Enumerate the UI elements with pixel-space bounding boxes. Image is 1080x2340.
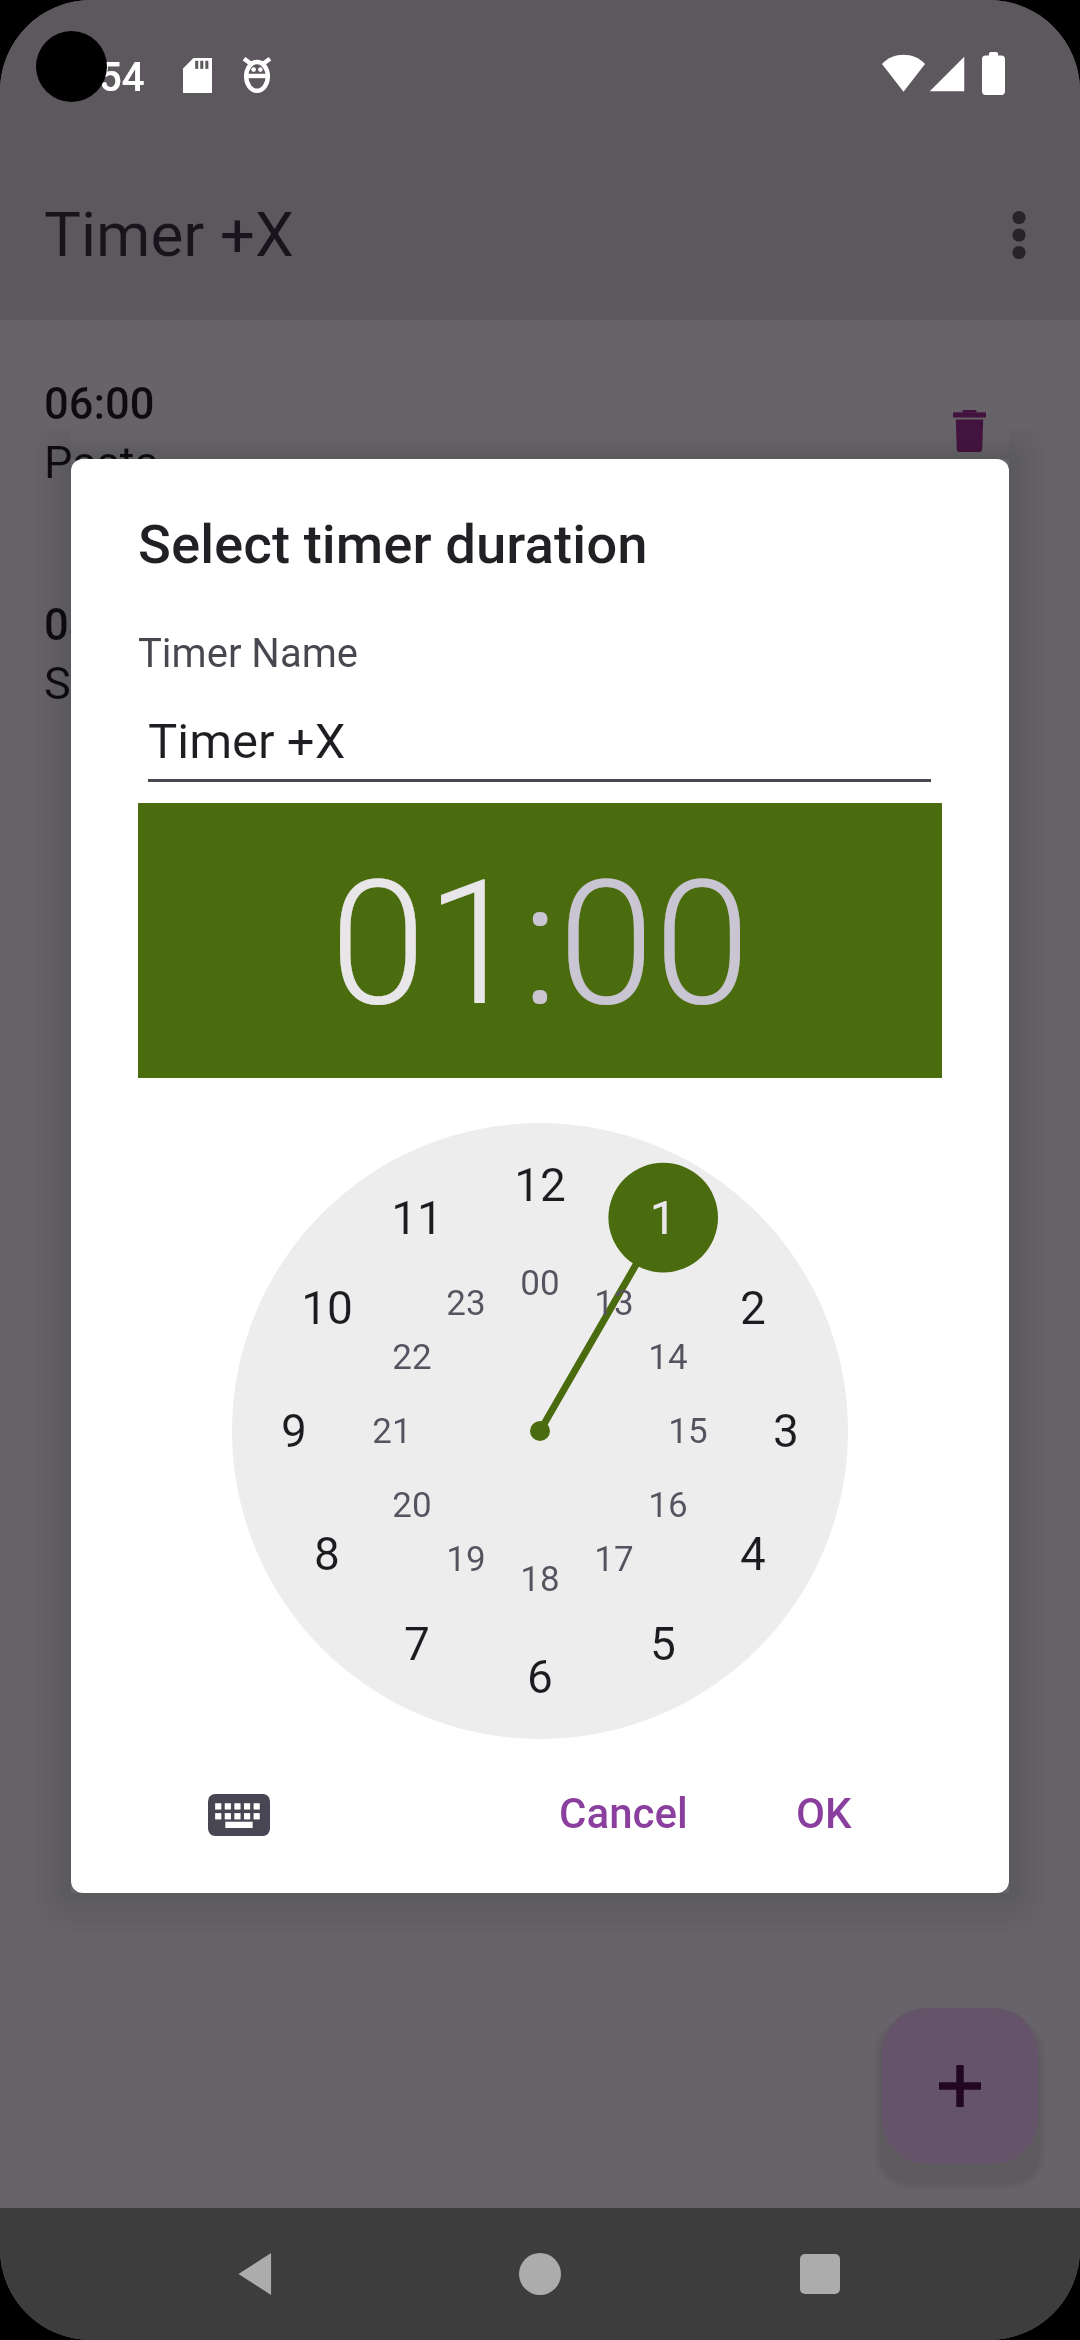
staticText: Pasta	[44, 436, 160, 489]
button[interactable]: Switch to text input mode	[187, 1764, 291, 1866]
staticText: 5	[650, 1617, 676, 1671]
staticText: 16	[648, 1485, 688, 1526]
staticText: 10:54	[43, 54, 145, 101]
button[interactable]: 11	[373, 1174, 461, 1262]
button[interactable]: More options	[959, 175, 1079, 295]
staticText: Cancel	[559, 1789, 688, 1838]
staticText: 14	[648, 1337, 688, 1378]
staticText: 18	[520, 1559, 560, 1600]
staticText: 23	[446, 1283, 486, 1324]
button[interactable]: 6	[496, 1633, 584, 1721]
staticText: 6	[527, 1650, 553, 1704]
button[interactable]: 18	[496, 1535, 584, 1623]
button[interactable]: 15	[644, 1387, 732, 1475]
button[interactable]: 20	[368, 1461, 456, 1549]
staticText: 13	[594, 1283, 634, 1324]
button[interactable]: 4	[709, 1510, 797, 1598]
button[interactable]: 06:00	[0, 376, 1080, 526]
button[interactable]: 23	[422, 1259, 510, 1347]
button[interactable]: 13	[570, 1259, 658, 1347]
staticText: 4	[740, 1527, 766, 1581]
staticText: OK	[796, 1789, 852, 1838]
button[interactable]: 17	[570, 1515, 658, 1603]
staticText: 06:00	[44, 379, 155, 430]
button[interactable]: 01	[138, 803, 942, 1078]
button[interactable]: 00	[496, 1239, 584, 1327]
staticText: 8	[314, 1527, 340, 1581]
button[interactable]: 21	[348, 1387, 436, 1475]
staticText: 01	[330, 843, 522, 1046]
button[interactable]: 3	[742, 1387, 830, 1475]
button[interactable]: Delete timer	[919, 381, 1019, 481]
button[interactable]: 7	[373, 1600, 461, 1688]
staticText: 11	[391, 1191, 443, 1245]
button[interactable]: Recents	[765, 2219, 875, 2329]
staticText: Timer +X	[148, 713, 346, 770]
button[interactable]: 9	[250, 1387, 338, 1475]
staticText: 21	[372, 1411, 412, 1452]
button[interactable]: 14	[624, 1313, 712, 1401]
staticText: 12	[514, 1158, 566, 1212]
staticText: 2	[740, 1281, 766, 1335]
button[interactable]: Cancel	[529, 1771, 718, 1856]
button[interactable]: 2	[709, 1264, 797, 1352]
button[interactable]: OK	[766, 1771, 882, 1856]
button[interactable]: 1	[619, 1174, 707, 1262]
button[interactable]: 16	[624, 1461, 712, 1549]
staticText: Soft egg	[44, 657, 213, 710]
button[interactable]: 8	[283, 1510, 371, 1598]
staticText: 7	[404, 1617, 430, 1671]
button[interactable]: 22	[368, 1313, 456, 1401]
button[interactable]: 5	[619, 1600, 707, 1688]
staticText: 3	[773, 1404, 799, 1458]
staticText: 00	[520, 1263, 560, 1304]
button[interactable]: 10	[283, 1264, 371, 1352]
staticText: 20	[392, 1485, 432, 1526]
button[interactable]: Back	[202, 2219, 312, 2329]
button[interactable]: 19	[422, 1515, 510, 1603]
staticText: 9	[281, 1404, 307, 1458]
button[interactable]: 12	[496, 1141, 584, 1229]
staticText: 22	[392, 1337, 432, 1378]
staticText: Select timer duration	[138, 512, 648, 576]
staticText: 19	[446, 1539, 486, 1580]
staticText: 03:00	[44, 600, 155, 651]
staticText: 1	[650, 1191, 676, 1245]
button[interactable]: Add timer	[882, 2008, 1038, 2164]
staticText: 17	[594, 1539, 634, 1580]
staticText: 15	[668, 1411, 708, 1452]
staticText: Timer Name	[138, 630, 358, 677]
button[interactable]: Home	[485, 2219, 595, 2329]
staticText: Timer +X	[44, 198, 294, 271]
button[interactable]: 03:00	[0, 597, 1080, 747]
button[interactable]: Delete timer	[919, 602, 1019, 702]
staticText: :00	[522, 843, 751, 1046]
staticText: 10	[301, 1281, 353, 1335]
